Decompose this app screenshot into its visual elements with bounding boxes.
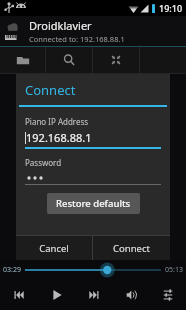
staticText: Droidklavier <box>29 18 92 33</box>
staticText: Connect <box>25 81 76 99</box>
staticText: Restore defaults <box>56 197 131 210</box>
staticText: Connect <box>113 242 150 255</box>
staticText: 19:10 <box>159 2 183 14</box>
button[interactable]: 192.168.88.1 <box>25 130 161 149</box>
button[interactable]: Restore defaults <box>47 193 140 214</box>
button[interactable]: Collapse <box>93 47 139 73</box>
button[interactable]: Files <box>0 47 45 73</box>
staticText: 03:29 <box>3 265 21 275</box>
button[interactable] <box>25 172 161 185</box>
staticText: Cancel <box>39 242 69 255</box>
staticText: Piano IP Address <box>25 116 89 127</box>
button[interactable]: Search <box>46 47 92 73</box>
button[interactable]: Seek bar <box>25 263 161 277</box>
staticText: 192.168.88.1 <box>26 130 92 145</box>
button[interactable]: Next <box>75 279 112 310</box>
button[interactable]: Volume <box>112 279 149 310</box>
staticText: 05:13 <box>165 265 183 275</box>
button[interactable]: Previous <box>0 279 38 310</box>
staticText: Connected to: 192.168.88.1 <box>29 34 125 44</box>
staticText: Password <box>25 157 62 168</box>
button[interactable]: Droidklavier <box>0 16 186 46</box>
button[interactable]: Play <box>38 279 75 310</box>
button[interactable]: Connect <box>93 236 170 260</box>
button[interactable]: Settings <box>149 279 186 310</box>
button[interactable]: Cancel <box>16 236 92 260</box>
